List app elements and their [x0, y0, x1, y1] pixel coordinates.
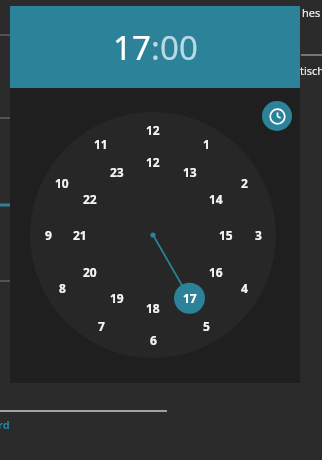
- staticText: 23: [110, 164, 124, 180]
- button[interactable]: 5: [194, 317, 218, 335]
- button[interactable]: 16: [204, 263, 228, 281]
- staticText: 18: [146, 300, 160, 316]
- button[interactable]: 13: [178, 163, 202, 181]
- button[interactable]: 17: [10, 6, 300, 88]
- button[interactable]: 19: [105, 289, 129, 307]
- staticText: :: [151, 25, 160, 70]
- staticText: 7: [98, 318, 105, 334]
- button[interactable]: 10: [50, 174, 74, 192]
- staticText: 2: [241, 175, 248, 191]
- staticText: 14: [209, 191, 223, 207]
- button[interactable]: 17: [178, 289, 202, 307]
- button[interactable]: 6: [141, 331, 165, 349]
- button[interactable]: 20: [78, 263, 102, 281]
- staticText: 21: [73, 227, 87, 243]
- staticText: 10: [55, 175, 69, 191]
- button[interactable]: 8: [50, 279, 74, 297]
- staticText: 19: [110, 290, 124, 306]
- button[interactable]: 7: [89, 317, 113, 335]
- staticText: 22: [83, 191, 97, 207]
- button[interactable]: 12: [141, 121, 165, 139]
- staticText: 20: [83, 264, 97, 280]
- staticText: 11: [94, 136, 108, 152]
- staticText: 12: [146, 154, 160, 170]
- staticText: 5: [203, 318, 210, 334]
- button[interactable]: 15: [214, 226, 238, 244]
- button[interactable]: 00: [160, 25, 198, 70]
- button[interactable]: 2: [232, 174, 256, 192]
- button[interactable]: 18: [141, 299, 165, 317]
- staticText: 13: [183, 164, 197, 180]
- button[interactable]: 12: [141, 153, 165, 171]
- button[interactable]: 3: [246, 226, 270, 244]
- staticText: 3: [255, 227, 262, 243]
- staticText: 15: [219, 227, 233, 243]
- staticText: 8: [59, 280, 66, 296]
- button[interactable]: 21: [68, 226, 92, 244]
- button[interactable]: 22: [78, 190, 102, 208]
- staticText: 6: [150, 332, 157, 348]
- button[interactable]: 1: [10, 6, 300, 383]
- button[interactable]: 11: [89, 135, 113, 153]
- button[interactable]: Switch to text input mode: [262, 101, 292, 131]
- staticText: 1: [203, 136, 210, 152]
- staticText: 9: [45, 227, 52, 243]
- staticText: hes: [302, 5, 321, 20]
- staticText: tisch: [300, 63, 322, 78]
- button[interactable]: 4: [232, 279, 256, 297]
- staticText: rd: [0, 417, 10, 432]
- button[interactable]: 14: [204, 190, 228, 208]
- staticText: 4: [241, 280, 248, 296]
- staticText: 00: [160, 25, 198, 70]
- staticText: 12: [146, 122, 160, 138]
- button[interactable]: 17: [113, 25, 151, 70]
- staticText: 17: [183, 290, 197, 306]
- button[interactable]: 1: [194, 135, 218, 153]
- staticText: 17: [113, 25, 151, 70]
- staticText: 16: [209, 264, 223, 280]
- button[interactable]: 23: [105, 163, 129, 181]
- button[interactable]: 9: [36, 226, 60, 244]
